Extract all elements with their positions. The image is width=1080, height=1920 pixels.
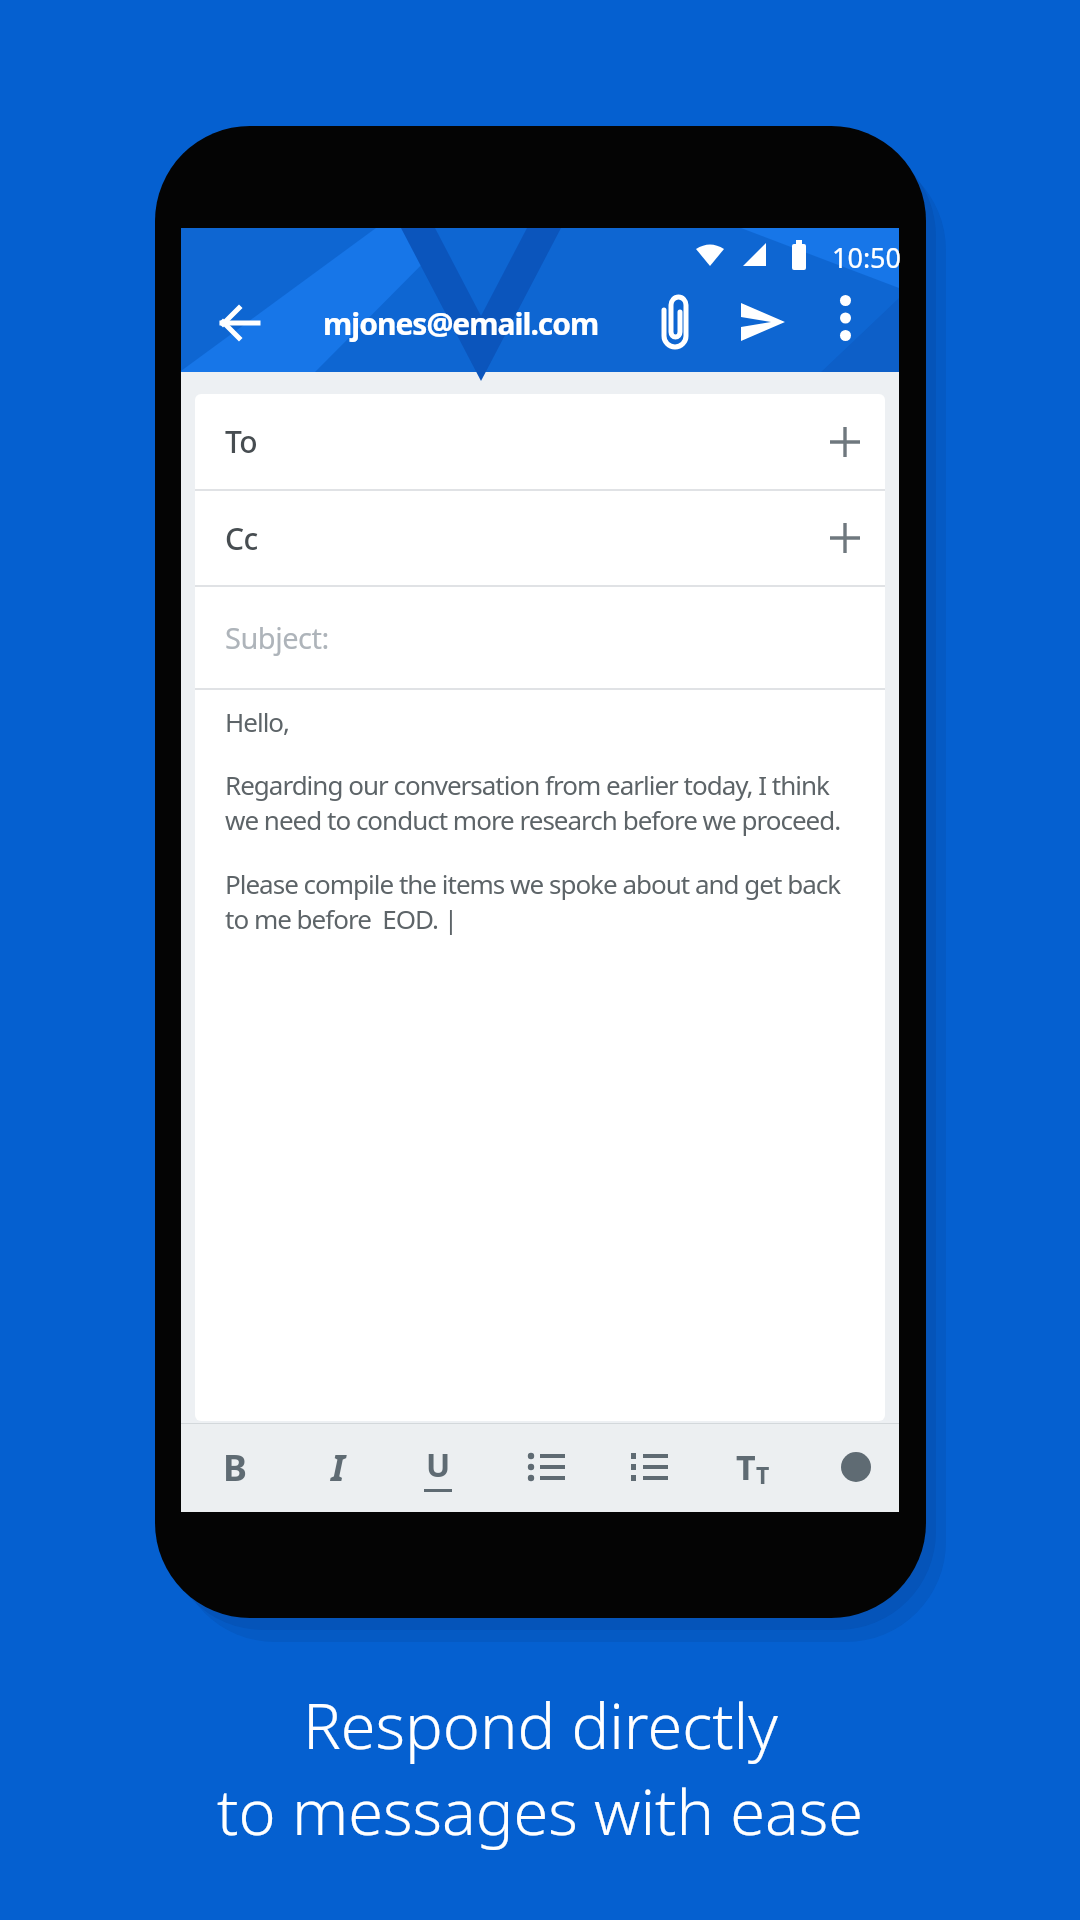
button[interactable] [211, 294, 269, 352]
button[interactable]: U [412, 1431, 464, 1503]
button[interactable] [645, 292, 705, 352]
staticText: mjones@email.com [323, 303, 599, 344]
button[interactable]: Subject: [195, 587, 885, 688]
staticText: 10:50 [832, 239, 902, 275]
staticText: Subject: [225, 618, 329, 657]
staticText: To [225, 421, 258, 462]
staticText: Hello, [225, 704, 290, 739]
staticText: to me before EOD. | [225, 901, 458, 936]
button[interactable] [624, 1431, 676, 1503]
staticText: Regarding our conversation from earlier … [225, 767, 829, 802]
button[interactable] [521, 1431, 573, 1503]
staticText: Respond directly [303, 1682, 778, 1768]
button[interactable]: T [727, 1431, 779, 1503]
staticText: we need to conduct more research before … [225, 802, 841, 837]
staticText: Please compile the items we spoke about … [225, 866, 841, 901]
button[interactable]: To [195, 394, 885, 489]
staticText: T [756, 1459, 770, 1490]
staticText: T [736, 1444, 756, 1490]
staticText: I [331, 1443, 345, 1492]
button[interactable] [830, 1431, 882, 1503]
button[interactable]: I [312, 1431, 364, 1503]
staticText: to messages with ease [217, 1768, 864, 1854]
staticText: B [223, 1443, 247, 1492]
staticText: Cc [225, 518, 258, 559]
staticText: U [426, 1443, 451, 1487]
button[interactable]: B [209, 1431, 261, 1503]
button[interactable] [819, 292, 871, 344]
button[interactable] [733, 292, 793, 352]
button[interactable]: Cc [195, 491, 885, 585]
